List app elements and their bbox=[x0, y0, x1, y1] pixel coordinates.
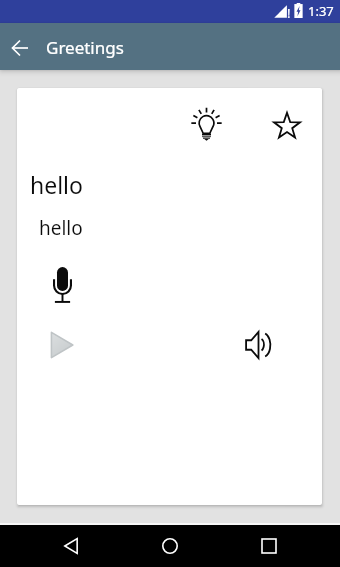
button[interactable]: Back bbox=[49, 525, 93, 567]
button[interactable]: Back bbox=[4, 32, 36, 64]
staticText: hello bbox=[30, 169, 83, 200]
staticText: ! bbox=[287, 4, 291, 22]
button[interactable]: Recents bbox=[247, 525, 291, 567]
staticText: hello bbox=[39, 215, 83, 241]
staticText: Greetings bbox=[46, 36, 124, 70]
button[interactable]: Home bbox=[148, 525, 192, 567]
button[interactable]: Play bbox=[42, 325, 82, 365]
staticText: 1:37 bbox=[308, 2, 334, 20]
button[interactable]: Speak bbox=[238, 325, 278, 365]
button[interactable]: Hint bbox=[186, 105, 226, 145]
button[interactable]: Favorite bbox=[267, 105, 307, 145]
button[interactable]: Record bbox=[42, 264, 82, 304]
